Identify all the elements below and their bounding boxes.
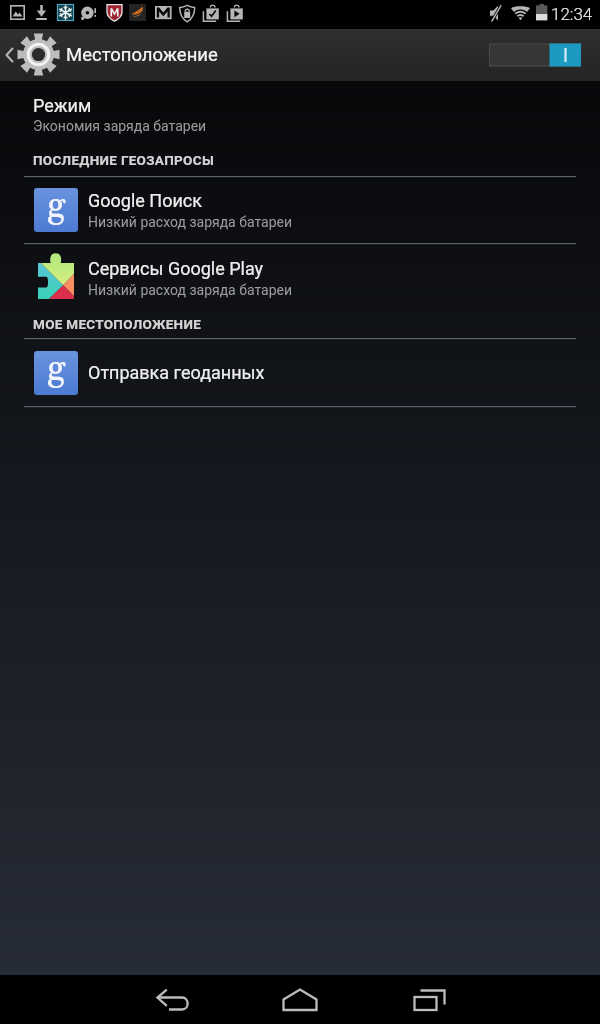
- staticText: Низкий расход заряда батареи: [88, 282, 293, 298]
- button[interactable]: Back: [140, 975, 204, 1024]
- staticText: Низкий расход заряда батареи: [88, 214, 293, 230]
- button[interactable]: Режим: [0, 81, 600, 145]
- button[interactable]: g: [0, 339, 600, 406]
- staticText: Google Поиск: [88, 190, 202, 211]
- staticText: Сервисы Google Play: [88, 258, 264, 279]
- button[interactable]: g: [0, 177, 600, 243]
- staticText: Отправка геоданных: [88, 362, 265, 383]
- button[interactable]: Location on/off: [488, 29, 600, 81]
- staticText: Режим: [33, 95, 92, 116]
- button[interactable]: Сервисы Google Play: [0, 244, 600, 311]
- button[interactable]: Recent apps: [396, 975, 460, 1024]
- staticText: ПОСЛЕДНИЕ ГЕОЗАПРОСЫ: [33, 152, 214, 168]
- staticText: Местоположение: [66, 44, 218, 66]
- staticText: g: [47, 351, 66, 391]
- staticText: Экономия заряда батареи: [33, 118, 207, 134]
- staticText: 12:34: [551, 4, 593, 24]
- staticText: МОЕ МЕСТОПОЛОЖЕНИЕ: [33, 316, 202, 332]
- button[interactable]: Местоположение: [0, 29, 430, 81]
- staticText: g: [47, 188, 66, 228]
- button[interactable]: Home: [268, 975, 332, 1024]
